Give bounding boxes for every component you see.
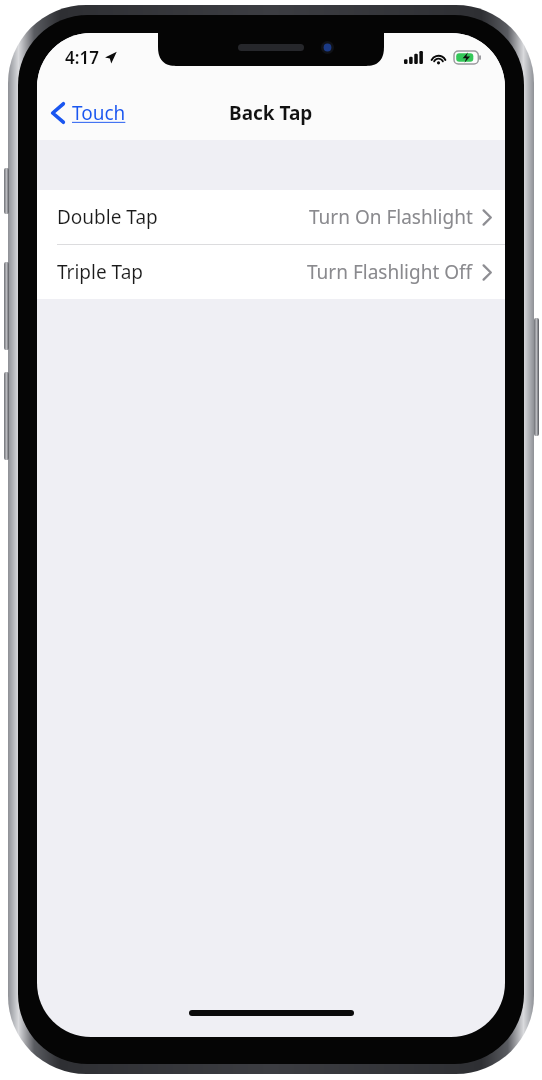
staticText: Double Tap xyxy=(57,204,158,230)
staticText: Triple Tap xyxy=(57,259,143,285)
staticText: 4:17 xyxy=(65,46,99,69)
staticText: Turn Flashlight Off xyxy=(307,259,473,285)
button[interactable]: Double Tap xyxy=(37,190,505,244)
button[interactable]: Triple Tap xyxy=(37,245,505,299)
staticText: Turn On Flashlight xyxy=(309,204,473,230)
staticText: Touch xyxy=(72,100,126,126)
staticText: Back Tap xyxy=(229,100,313,126)
button[interactable]: Touch xyxy=(51,100,224,126)
